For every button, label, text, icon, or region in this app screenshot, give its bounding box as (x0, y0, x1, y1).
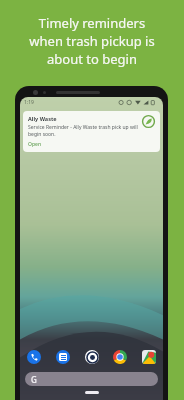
button[interactable]: Ally Waste (23, 111, 160, 152)
staticText: G (31, 374, 37, 385)
button[interactable]: Messages (56, 350, 70, 364)
button[interactable]: Ally Waste (85, 350, 99, 364)
staticText: Timely reminders when trash pickup is ab… (29, 14, 155, 68)
button[interactable]: Chrome (113, 350, 127, 364)
staticText: Ally Waste (28, 115, 57, 122)
staticText: Service Reminder - Ally Waste trash pick… (28, 124, 138, 138)
button[interactable]: Open (28, 141, 42, 148)
button[interactable]: Maps (142, 350, 156, 364)
button[interactable]: Phone (27, 350, 41, 364)
staticText: 1:19 (24, 99, 34, 106)
button[interactable]: Search (25, 372, 158, 386)
